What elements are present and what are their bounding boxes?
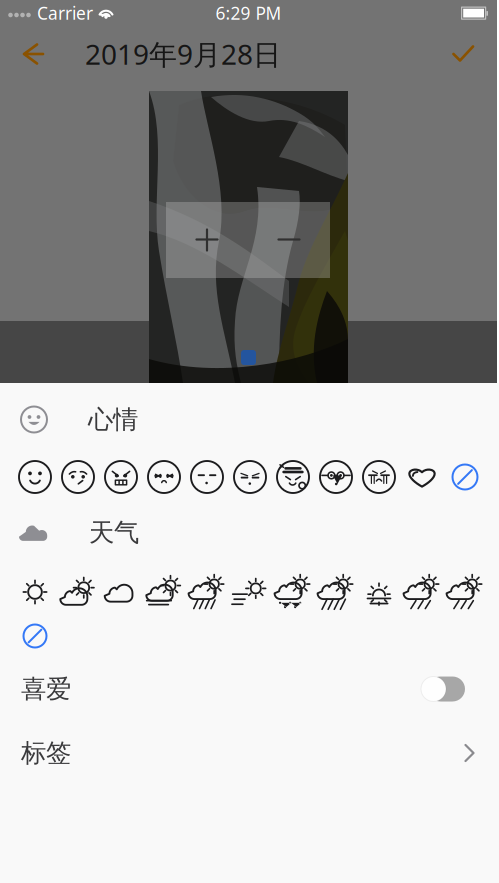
button[interactable]: Option bbox=[318, 574, 354, 610]
button[interactable]: Option bbox=[404, 574, 440, 610]
button[interactable]: Option bbox=[361, 574, 397, 610]
staticText: 心情 bbox=[88, 404, 138, 435]
button[interactable]: Back bbox=[0, 31, 55, 77]
button[interactable]: Zoom out bbox=[248, 202, 330, 278]
button[interactable]: Option bbox=[275, 574, 311, 610]
button[interactable]: Option bbox=[189, 574, 225, 610]
button[interactable]: Option bbox=[362, 460, 396, 494]
button[interactable]: Option bbox=[233, 460, 267, 494]
button[interactable]: Option bbox=[61, 460, 95, 494]
button[interactable]: Option bbox=[319, 460, 353, 494]
button[interactable]: Option bbox=[103, 574, 139, 610]
button[interactable]: Option bbox=[60, 574, 96, 610]
staticText: 6:29 PM bbox=[215, 1, 281, 24]
button[interactable]: Option bbox=[17, 574, 53, 610]
button[interactable]: 标签 bbox=[0, 721, 499, 785]
button[interactable]: Option bbox=[447, 574, 483, 610]
staticText: Carrier bbox=[37, 1, 93, 24]
staticText: 喜爱 bbox=[21, 673, 71, 704]
button[interactable]: Option bbox=[147, 460, 181, 494]
staticText: 天气 bbox=[89, 517, 139, 548]
button[interactable]: Done bbox=[444, 32, 497, 76]
button[interactable]: Option bbox=[232, 574, 268, 610]
button[interactable]: No weather bbox=[22, 623, 48, 649]
button[interactable]: 喜爱 bbox=[0, 657, 499, 721]
button[interactable]: Option bbox=[18, 460, 52, 494]
button[interactable]: Option bbox=[146, 574, 182, 610]
button[interactable]: Zoom in bbox=[166, 202, 248, 278]
button[interactable]: Option bbox=[405, 460, 439, 494]
button[interactable]: Option bbox=[104, 460, 138, 494]
staticText: 标签 bbox=[21, 737, 71, 768]
button[interactable]: Option bbox=[448, 460, 482, 494]
button[interactable]: Option bbox=[190, 460, 224, 494]
button[interactable]: Option bbox=[276, 460, 310, 494]
staticText: 2019年9月28日 bbox=[85, 35, 281, 73]
